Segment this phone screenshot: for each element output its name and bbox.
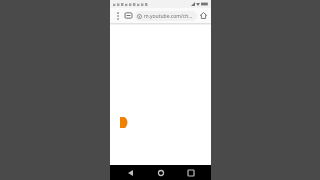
staticText: m.youtube.com/channel: [144, 13, 195, 20]
button[interactable]: Back: [119, 165, 141, 180]
button[interactable]: More options: [112, 10, 123, 21]
button[interactable]: Home: [198, 10, 209, 21]
button[interactable]: Home: [150, 165, 172, 180]
button[interactable]: Tabs: [123, 10, 134, 21]
button[interactable]: m.youtube.com/channel: [135, 11, 197, 21]
button[interactable]: Recent apps: [180, 165, 202, 180]
